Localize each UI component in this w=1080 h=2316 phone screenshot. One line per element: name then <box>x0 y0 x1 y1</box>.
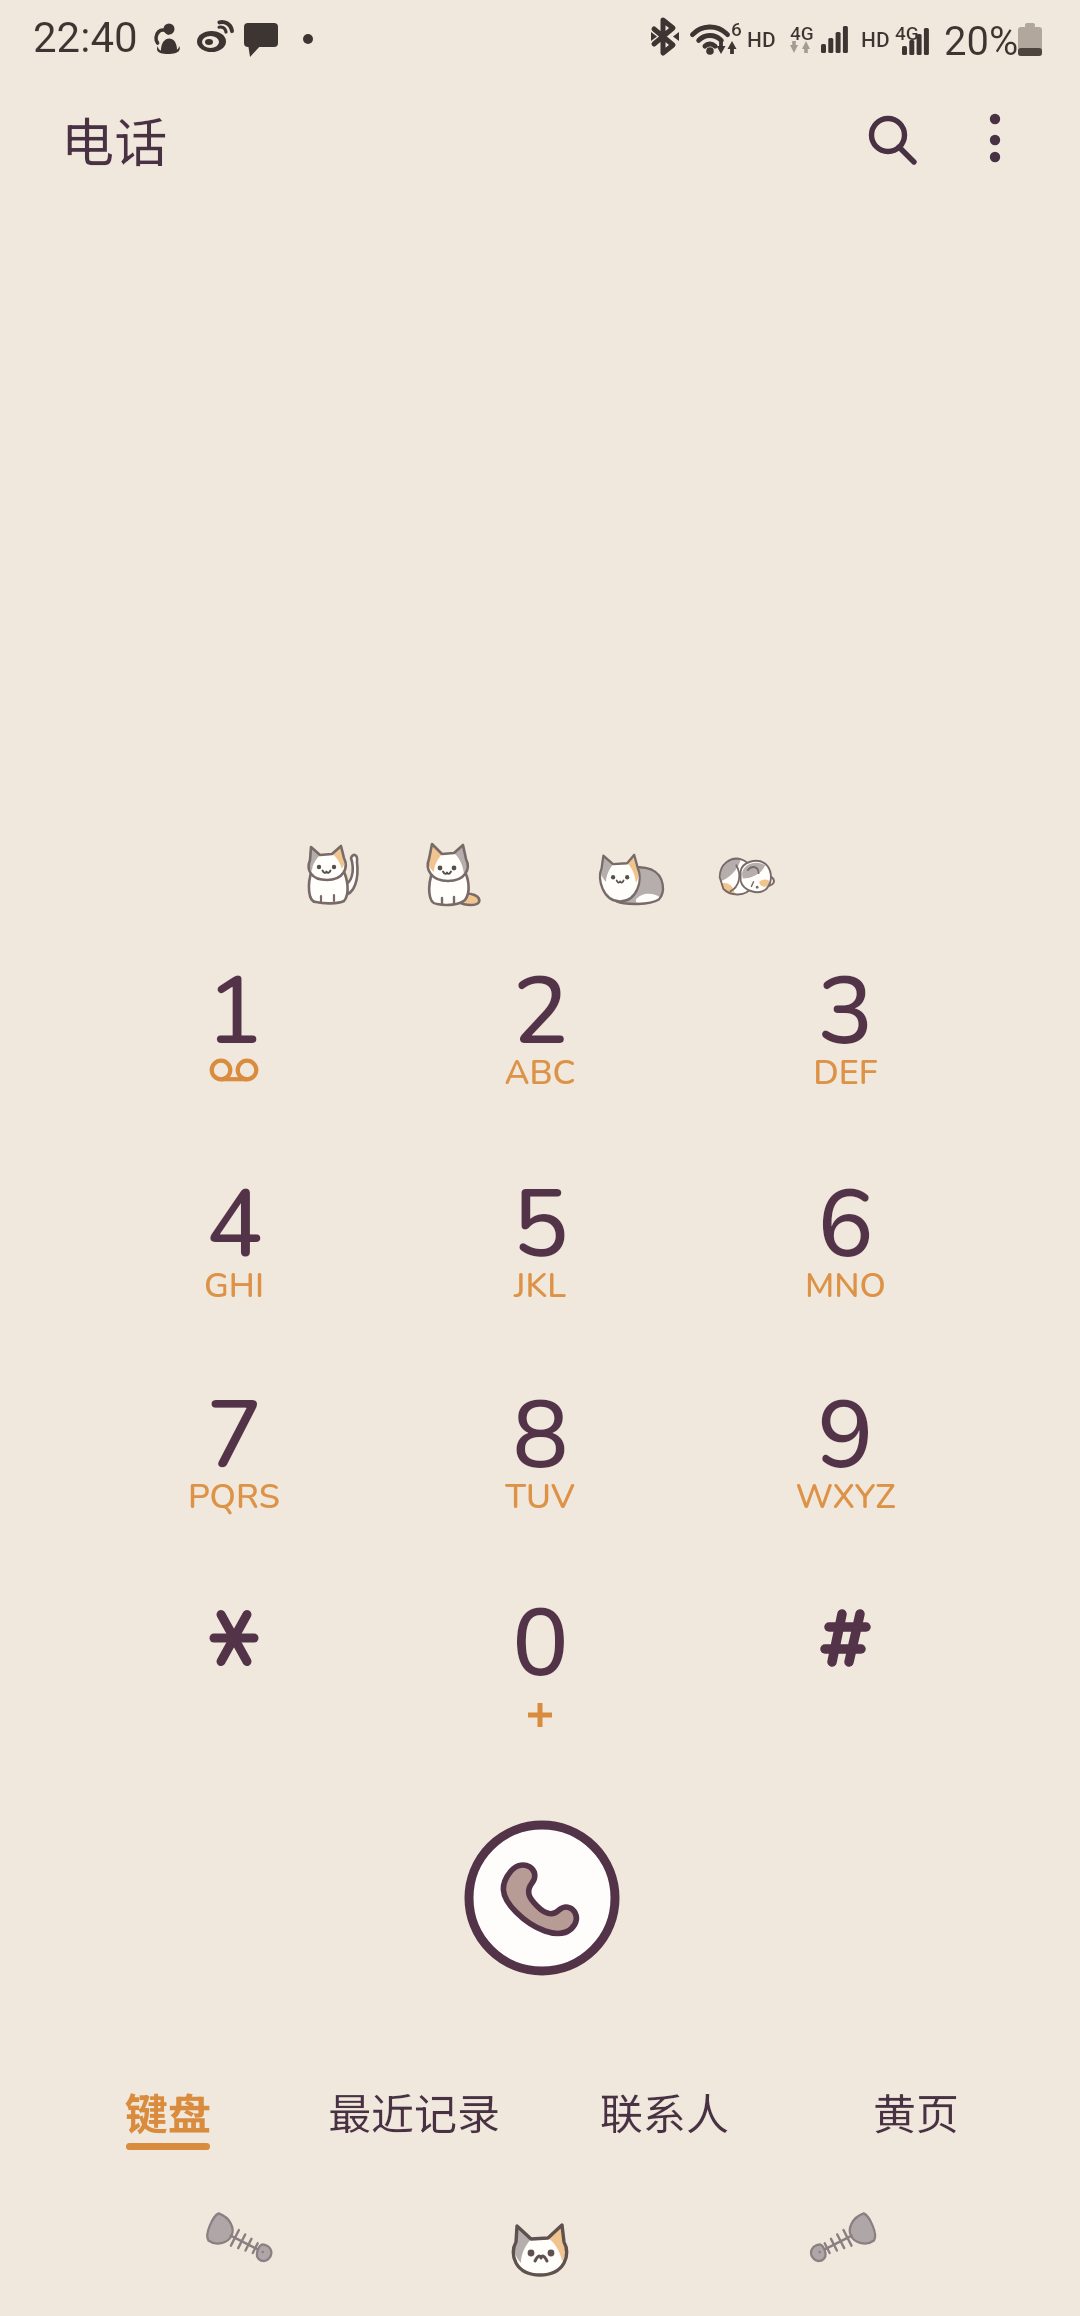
button[interactable]: 黄页 <box>790 2072 1042 2164</box>
button[interactable]: 2 ABC <box>422 947 658 1143</box>
staticText: 键盘 <box>125 2080 211 2142</box>
staticText: 黄页 <box>873 2080 959 2142</box>
staticText: 1 <box>206 948 263 1076</box>
button[interactable]: 3 DEF <box>727 947 963 1143</box>
staticText: HD <box>747 28 776 53</box>
staticText: 8 <box>512 1372 569 1500</box>
button[interactable]: Call <box>464 1820 620 1976</box>
staticText: 9 <box>817 1372 874 1500</box>
staticText: 最近记录 <box>328 2080 500 2142</box>
staticText: 5 <box>512 1161 569 1289</box>
staticText: 4G <box>895 22 919 44</box>
staticText: DEF <box>813 1050 878 1096</box>
staticText: 2 <box>512 948 569 1076</box>
button[interactable]: 9 WXYZ <box>727 1371 963 1567</box>
staticText: ABC <box>504 1050 576 1096</box>
staticText: 6 <box>817 1161 874 1289</box>
button[interactable]: 联系人 <box>538 2072 790 2164</box>
button[interactable]: pound <box>727 1579 963 1775</box>
staticText: 7 <box>206 1372 263 1500</box>
button[interactable]: 最近记录 <box>288 2072 540 2164</box>
button[interactable]: 8 TUV <box>422 1371 658 1567</box>
staticText: 电话 <box>61 101 167 178</box>
button[interactable]: 4 GHI <box>116 1160 352 1356</box>
staticText: PQRS <box>188 1474 280 1520</box>
button[interactable]: star <box>116 1579 352 1775</box>
staticText: 联系人 <box>600 2080 729 2142</box>
staticText: 4G <box>790 22 814 44</box>
button[interactable]: 1 <box>116 947 352 1143</box>
staticText: MNO <box>805 1263 886 1309</box>
staticText: 4 <box>206 1161 263 1289</box>
staticText: 22:40 <box>33 13 138 62</box>
staticText: HD <box>861 28 890 53</box>
button[interactable]: 7 PQRS <box>116 1371 352 1567</box>
button[interactable]: 6 MNO <box>727 1160 963 1356</box>
staticText: 6 <box>731 18 742 40</box>
button[interactable]: More options <box>947 91 1043 187</box>
button[interactable]: 5 JKL <box>422 1160 658 1356</box>
staticText: WXYZ <box>795 1474 896 1520</box>
button[interactable]: 0 plus <box>422 1579 658 1775</box>
staticText: 0 <box>512 1580 569 1708</box>
staticText: TUV <box>505 1474 575 1520</box>
staticText: 3 <box>817 948 874 1076</box>
button[interactable]: Search <box>840 91 936 187</box>
staticText: GHI <box>204 1263 264 1309</box>
staticText: JKL <box>514 1263 566 1309</box>
button[interactable]: 键盘 <box>42 2072 294 2164</box>
staticText: 20% <box>944 18 1019 65</box>
